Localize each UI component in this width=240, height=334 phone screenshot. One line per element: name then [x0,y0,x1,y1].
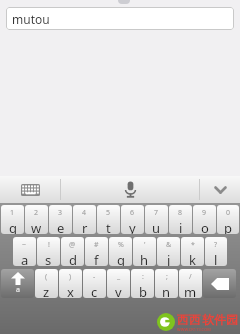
button[interactable]: Backspace [203,269,236,298]
staticText: & [166,240,172,250]
button[interactable]: Switch keyboard [0,176,60,203]
staticText: ~ [22,240,27,250]
staticText: 软件园 [202,312,238,327]
button[interactable]: % [109,237,132,266]
staticText: s [45,251,52,266]
staticText: _ [117,272,121,282]
staticText: ' [144,240,146,250]
button[interactable]: Hide keyboard [200,176,240,203]
button[interactable]: # [85,237,108,266]
staticText: h [140,251,149,266]
staticText: 1 [10,208,15,218]
button[interactable]: 0 [217,205,239,234]
staticText: k [189,251,196,266]
staticText: r [82,219,88,234]
staticText: b [139,283,147,298]
staticText: c [91,283,98,298]
button[interactable]: & [157,237,180,266]
button[interactable]: Shift [1,269,34,298]
staticText: x [67,283,74,298]
button[interactable]: ! [37,237,60,266]
staticText: z [43,283,50,298]
staticText: q [9,219,17,234]
staticText: @ [69,240,76,250]
staticText: ; [166,272,168,282]
staticText: 9 [202,208,207,218]
staticText: 3 [58,208,63,218]
staticText: 6 [130,208,135,218]
staticText: a [16,285,20,295]
staticText: 0 [226,208,231,218]
button[interactable]: ) [59,269,82,298]
staticText: n [162,283,171,298]
staticText: o [201,219,209,234]
button[interactable]: 4 [73,205,96,234]
staticText: : [142,272,144,282]
button[interactable]: 7 [145,205,168,234]
staticText: ( [45,272,48,282]
staticText: t [106,219,111,234]
staticText: ? [214,240,218,250]
staticText: j [167,251,171,266]
staticText: # [94,240,99,250]
staticText: p [224,219,232,234]
button[interactable]: - [83,269,106,298]
staticText: - [93,272,96,282]
staticText: w [31,219,42,234]
button[interactable]: ~ [13,237,36,266]
button[interactable]: 1 [1,205,24,234]
staticText: l [214,251,218,266]
button[interactable]: _ [107,269,130,298]
button[interactable]: ' [133,237,156,266]
staticText: 4 [82,208,87,218]
staticText: v [115,283,122,298]
staticText: a [21,251,29,266]
staticText: i [179,219,183,234]
staticText: 5 [106,208,111,218]
button[interactable]: 2 [25,205,48,234]
button[interactable]: mutou [6,7,234,30]
staticText: mutou [12,11,50,27]
button[interactable]: 5 [97,205,120,234]
button[interactable]: : [131,269,154,298]
staticText: m [184,283,197,298]
button[interactable]: * [181,237,204,266]
staticText: f [94,251,99,266]
staticText: WWW.CR173.COM [177,327,211,332]
staticText: % [118,240,124,250]
staticText: ) [69,272,72,282]
staticText: ! [48,240,50,250]
staticText: u [152,219,161,234]
staticText: 7 [154,208,159,218]
button[interactable]: ? [205,237,227,266]
button[interactable]: 3 [49,205,72,234]
button[interactable]: 6 [121,205,144,234]
button[interactable]: ( [35,269,58,298]
staticText: g [117,251,125,266]
button[interactable]: / [179,269,202,298]
button[interactable]: 8 [169,205,192,234]
staticText: 西西 [177,312,201,327]
staticText: / [189,272,192,282]
button[interactable]: ; [155,269,178,298]
button[interactable]: Voice input [61,176,199,203]
staticText: e [57,219,65,234]
staticText: y [129,219,136,234]
staticText: 8 [178,208,183,218]
button[interactable]: @ [61,237,84,266]
button[interactable]: 9 [193,205,216,234]
staticText: * [191,240,195,250]
staticText: 2 [34,208,39,218]
staticText: d [69,251,77,266]
